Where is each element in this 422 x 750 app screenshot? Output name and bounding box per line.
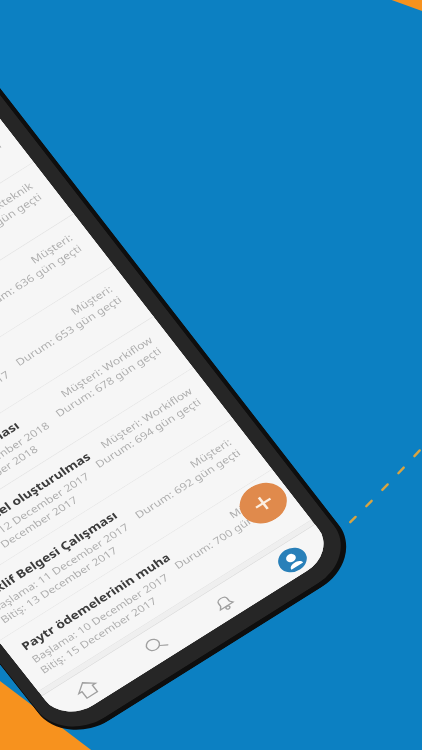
staticText: Başlama: 11 December 2017 (0, 520, 132, 615)
button[interactable]: Account (247, 525, 337, 595)
button[interactable]: Teklif dosyası (0, 265, 154, 490)
button[interactable]: Add task (231, 475, 296, 532)
staticText: Bitiş: 11 December 2018 (0, 442, 41, 525)
staticText: Durum: 678 gün geçti (52, 344, 164, 420)
button[interactable]: Teklif Belgesi Çalışması (0, 419, 272, 641)
staticText: Müşteri: (27, 230, 76, 266)
staticText: Müşteri: Workiflow (57, 333, 155, 400)
staticText: Müşteri: (67, 282, 116, 318)
button[interactable]: Fatura hazırlanması (0, 317, 193, 541)
button[interactable]: Rapor excel oluşturulması (0, 368, 233, 591)
button[interactable]: Paytr ödemelerinin muhasebeleştirilmesi (0, 469, 312, 692)
staticText: Müşteri: (226, 486, 274, 521)
staticText: Durum: 694 gün geçti (92, 395, 204, 471)
staticText: Başlama: 12 December 2017 (0, 469, 92, 565)
button[interactable]: Search (111, 610, 200, 681)
staticText: Bitiş: 14 December 2017 (0, 493, 80, 576)
staticText: Bitiş: 15 December 2017 (37, 594, 159, 676)
staticText: Başlama: 06 December 2017 (0, 367, 12, 463)
staticText: Bitiş: 09 December 2017 (0, 391, 1, 474)
staticText: Durum: 692 gün geçti (132, 446, 243, 521)
staticText: Müşteri: Bakteknik (0, 179, 36, 246)
staticText: Müşteri: (187, 435, 235, 471)
button[interactable]: Notifications (179, 567, 269, 638)
staticText: Durum: 653 gün geçti (12, 293, 124, 369)
staticText: Durum: 317 gün geçti (0, 190, 44, 266)
staticText: Başlama: 10 December 2017 (29, 571, 171, 666)
staticText: Durum: 636 gün geçti (0, 241, 84, 318)
staticText: Rapor excel oluşturulması (0, 449, 93, 553)
staticText: Teklif Belgesi Çalışması (0, 507, 121, 603)
staticText: Müşteri: Workiflow (97, 384, 195, 451)
button[interactable]: Tanıtım filmi çekimi (0, 110, 34, 337)
staticText: Başlama: 08 December 2018 (0, 419, 52, 514)
staticText: Durum: 700 gün geçti (171, 496, 282, 572)
staticText: Bitiş: 13 December 2017 (0, 543, 120, 626)
staticText: Paytr ödemelerinin muhasebeleştirilmesi (18, 550, 173, 654)
staticText: Fatura hazırlanması (0, 417, 23, 502)
button[interactable]: Sunum dosyası (0, 214, 114, 439)
button[interactable]: Home (42, 653, 132, 724)
staticText: Durum: 283 gün geçti (0, 138, 4, 215)
button[interactable]: Web sitesi yenilenmesi (0, 162, 74, 388)
